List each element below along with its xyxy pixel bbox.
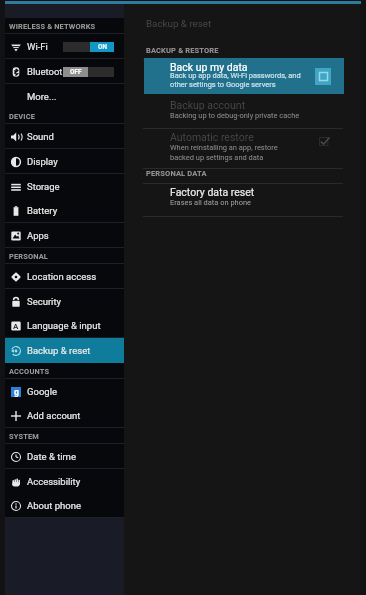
button[interactable]: Backup account [144,99,344,129]
staticText: ON [98,43,107,51]
button[interactable]: Bluetooth [5,59,124,84]
staticText: Automatic restore [170,131,254,143]
staticText: ACCOUNTS [9,367,50,376]
button[interactable]: Sound [5,124,124,149]
staticText: More... [27,91,57,102]
button[interactable]: Wi-Fi on [63,42,114,52]
button[interactable]: Location access [5,264,124,289]
staticText: Erases all data on phone [170,198,251,207]
button[interactable]: Wi-Fi [5,34,124,59]
staticText: About phone [27,500,81,511]
staticText: Accessibility [27,476,81,487]
staticText: Backing up to debug-only private cache [170,111,300,120]
button[interactable]: g [5,379,124,404]
button[interactable]: Battery [5,198,124,223]
staticText: Bluetooth [27,66,68,77]
staticText: Google [27,386,57,397]
staticText: Backup account [170,99,246,111]
button[interactable]: Automatic restore [144,131,344,169]
staticText: Backup & reset [146,18,212,29]
staticText: g [14,387,19,397]
staticText: Date & time [27,451,76,462]
staticText: Location access [27,271,97,282]
staticText: Display [27,156,58,167]
staticText: WIRELESS & NETWORKS [9,22,96,31]
staticText: Sound [27,131,54,142]
button[interactable]: Security [5,289,124,314]
staticText: PERSONAL DATA [146,169,207,178]
button[interactable]: Backup & reset [5,338,124,363]
button[interactable]: About phone [5,493,124,518]
button[interactable]: Back up my data checkbox [315,68,331,85]
staticText: Back up my data [170,61,248,73]
staticText: DEVICE [9,112,36,121]
staticText: backed up settings and data [170,153,264,162]
button[interactable]: Display [5,149,124,174]
button[interactable]: Add account [5,403,124,428]
staticText: Storage [27,181,60,192]
button[interactable]: A [5,313,124,338]
button[interactable]: Apps [5,223,124,248]
staticText: Apps [27,230,49,241]
button[interactable]: Storage [5,174,124,199]
button[interactable]: Bluetooth off [63,67,114,77]
staticText: Battery [27,205,58,216]
button[interactable]: Date & time [5,444,124,469]
staticText: When reinstalling an app, restore [170,143,278,152]
button[interactable]: Back up my data [144,58,344,94]
staticText: PERSONAL [9,252,48,261]
staticText: OFF [70,68,82,76]
staticText: Add account [27,410,81,421]
staticText: SYSTEM [9,432,39,441]
staticText: Factory data reset [170,186,255,198]
staticText: Language & input [27,320,101,331]
button[interactable]: Accessibility [5,469,124,494]
staticText: A [13,322,19,331]
button[interactable]: More... [5,84,124,109]
staticText: Security [27,296,62,307]
button[interactable]: Factory data reset [144,186,344,217]
staticText: BACKUP & RESTORE [146,46,219,55]
staticText: Back up app data, Wi-Fi passwords, and [170,71,301,80]
staticText: other settings to Google servers [170,80,276,89]
staticText: Wi-Fi [27,41,48,52]
staticText: Backup & reset [27,345,91,356]
